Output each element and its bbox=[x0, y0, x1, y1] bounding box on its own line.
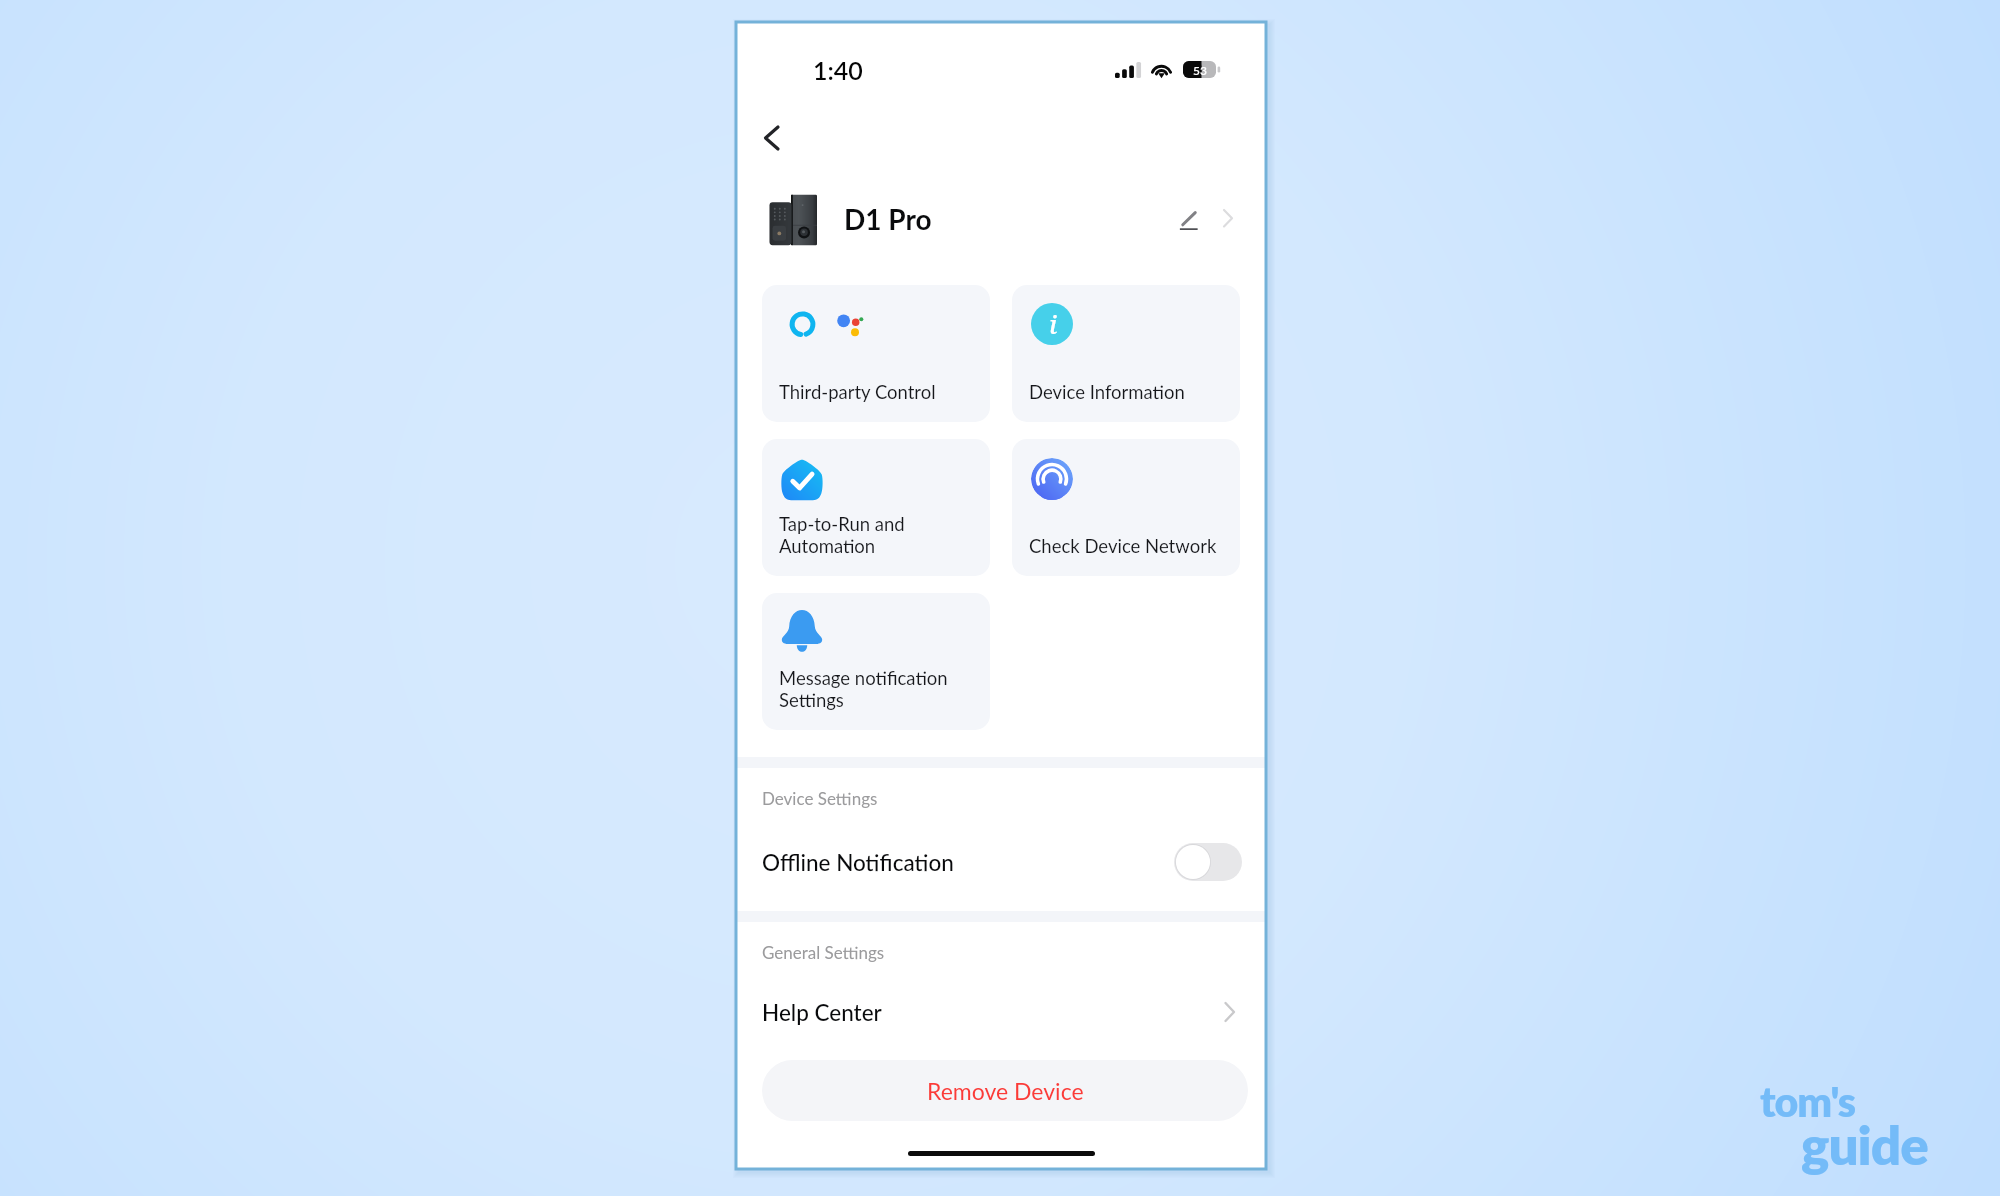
staticText: Third-party Control bbox=[779, 381, 936, 403]
staticText: Remove Device bbox=[927, 1077, 1084, 1105]
staticText: Tap-to-Run and Automation bbox=[779, 513, 905, 557]
staticText: Check Device Network bbox=[1029, 535, 1217, 557]
button[interactable]: Help Center bbox=[736, 983, 1266, 1041]
staticText: 1:40 bbox=[813, 55, 863, 85]
staticText: General Settings bbox=[762, 942, 885, 962]
staticText: guide bbox=[1801, 1113, 1928, 1177]
button[interactable]: Message notification Settings bbox=[762, 593, 990, 730]
staticText: Help Center bbox=[762, 999, 882, 1026]
staticText: Device Information bbox=[1029, 381, 1185, 403]
staticText: tom's bbox=[1760, 1077, 1856, 1126]
button[interactable]: Third-party Control bbox=[762, 285, 990, 422]
button[interactable]: Check Device Network bbox=[1012, 439, 1240, 576]
staticText: Offline Notification bbox=[762, 849, 954, 876]
button[interactable]: Edit name bbox=[1173, 204, 1205, 236]
button[interactable]: Tap-to-Run and Automation bbox=[762, 439, 990, 576]
staticText: D1 Pro bbox=[844, 202, 932, 236]
button[interactable]: i bbox=[1012, 285, 1240, 422]
staticText: Device Settings bbox=[762, 788, 878, 808]
button[interactable]: Device details bbox=[1214, 205, 1240, 231]
staticText: i bbox=[1049, 306, 1058, 341]
button[interactable]: Offline Notification bbox=[736, 833, 1266, 891]
button[interactable]: Back bbox=[752, 114, 792, 154]
button[interactable]: Remove Device bbox=[762, 1060, 1248, 1121]
staticText: 53 bbox=[1193, 63, 1207, 77]
staticText: Message notification Settings bbox=[779, 667, 948, 711]
button[interactable]: Offline Notification toggle bbox=[1174, 843, 1242, 881]
